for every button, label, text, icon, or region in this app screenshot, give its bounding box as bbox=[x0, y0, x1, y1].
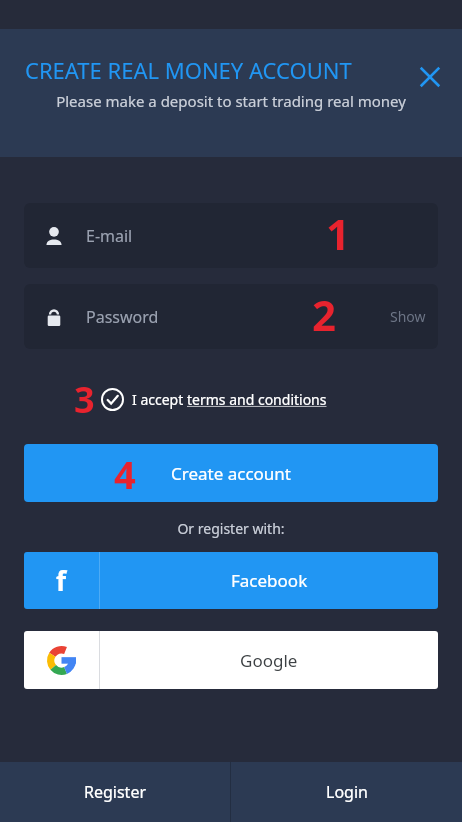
staticText: Login bbox=[326, 781, 368, 803]
staticText: terms and conditions bbox=[187, 390, 327, 409]
button[interactable]: f bbox=[24, 552, 438, 609]
button[interactable]: Create account bbox=[24, 444, 438, 502]
staticText: Facebook bbox=[231, 569, 308, 592]
button[interactable]: Close bbox=[406, 53, 454, 101]
staticText: I accept bbox=[132, 390, 187, 409]
staticText: 4 bbox=[114, 448, 136, 500]
button[interactable]: Show bbox=[378, 297, 438, 336]
button[interactable]: Password bbox=[24, 284, 438, 349]
staticText: 2 bbox=[312, 286, 337, 343]
staticText: E-mail bbox=[86, 225, 133, 247]
staticText: Create account bbox=[171, 462, 291, 485]
staticText: Please make a deposit to start trading r… bbox=[42, 91, 420, 111]
staticText: f bbox=[56, 563, 67, 598]
button[interactable]: Google bbox=[24, 631, 438, 689]
staticText: 3 bbox=[74, 375, 95, 424]
staticText: CREATE REAL MONEY ACCOUNT bbox=[25, 55, 352, 85]
button[interactable]: Login bbox=[231, 762, 462, 822]
button[interactable]: I accept bbox=[101, 388, 327, 411]
staticText: Or register with: bbox=[0, 519, 462, 538]
staticText: Register bbox=[84, 781, 147, 803]
staticText: Password bbox=[86, 306, 159, 328]
staticText: 1 bbox=[326, 205, 351, 262]
button[interactable]: E-mail bbox=[24, 203, 438, 268]
staticText: Google bbox=[240, 649, 298, 672]
staticText: Show bbox=[390, 307, 426, 326]
button[interactable]: Register bbox=[0, 762, 230, 822]
